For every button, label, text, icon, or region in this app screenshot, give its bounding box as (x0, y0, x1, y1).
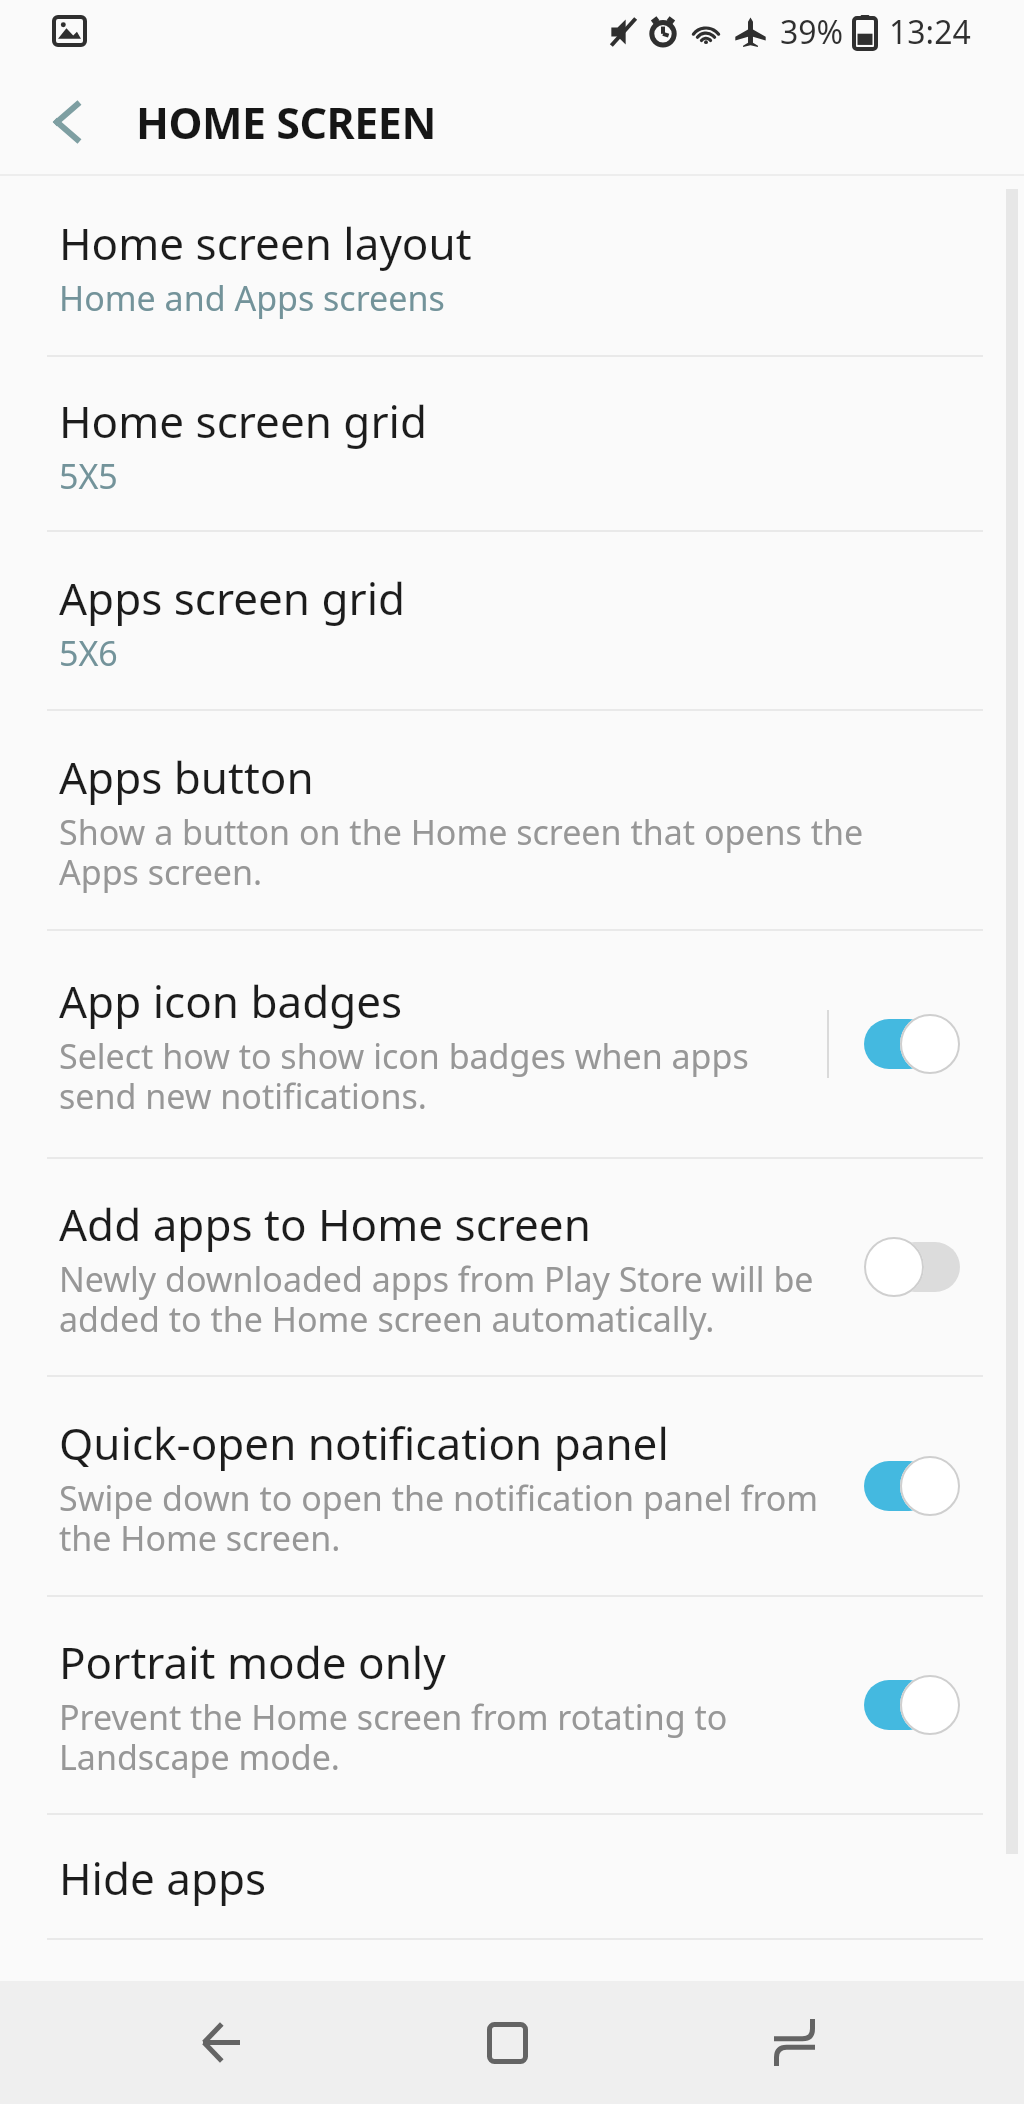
staticText: Swipe down to open the notification pane… (59, 1475, 819, 1561)
staticText: Apps screen grid (59, 568, 406, 628)
staticText: Portrait mode only (59, 1632, 446, 1692)
button[interactable]: Back (0, 68, 136, 176)
staticText: Select how to show icon badges when apps… (59, 1033, 749, 1119)
staticText: 5X5 (59, 453, 118, 499)
staticText: Home screen layout (59, 213, 472, 273)
button[interactable]: Apps button (0, 711, 1024, 929)
staticText: App icon badges (59, 971, 403, 1031)
button[interactable]: Home (437, 1981, 577, 2104)
staticText: Prevent the Home screen from rotating to… (59, 1694, 728, 1780)
staticText: Quick-open notification panel (59, 1413, 669, 1473)
staticText: HOME SCREEN (136, 93, 436, 152)
staticText: Newly downloaded apps from Play Store wi… (59, 1256, 814, 1342)
button[interactable]: Home screen layout (0, 176, 1024, 355)
button[interactable]: Recents (724, 1981, 864, 2104)
staticText: Home screen grid (59, 391, 428, 451)
button[interactable]: Home screen grid (0, 357, 1024, 530)
button[interactable]: Toggle on (864, 1672, 960, 1738)
button[interactable]: Toggle on (864, 1011, 960, 1077)
staticText: Apps button (59, 747, 314, 807)
button[interactable]: Hide apps (0, 1815, 1024, 1938)
button[interactable]: Portrait mode only (0, 1597, 1024, 1813)
button[interactable]: Quick-open notification panel (0, 1377, 1024, 1595)
staticText: Home and Apps screens (59, 275, 445, 321)
button[interactable]: App icon badges (0, 931, 1024, 1157)
staticText: Show a button on the Home screen that op… (59, 809, 864, 895)
button[interactable]: Apps screen grid (0, 532, 1024, 709)
staticText: Hide apps (59, 1848, 267, 1908)
staticText: 13:24 (889, 10, 971, 54)
button[interactable]: Toggle on (864, 1453, 960, 1519)
staticText: Add apps to Home screen (59, 1194, 591, 1254)
button[interactable]: Add apps to Home screen (0, 1159, 1024, 1375)
staticText: 5X6 (59, 630, 118, 676)
staticText: 39% (780, 10, 844, 54)
button[interactable]: Back (151, 1981, 291, 2104)
button[interactable]: Toggle off (864, 1234, 960, 1300)
